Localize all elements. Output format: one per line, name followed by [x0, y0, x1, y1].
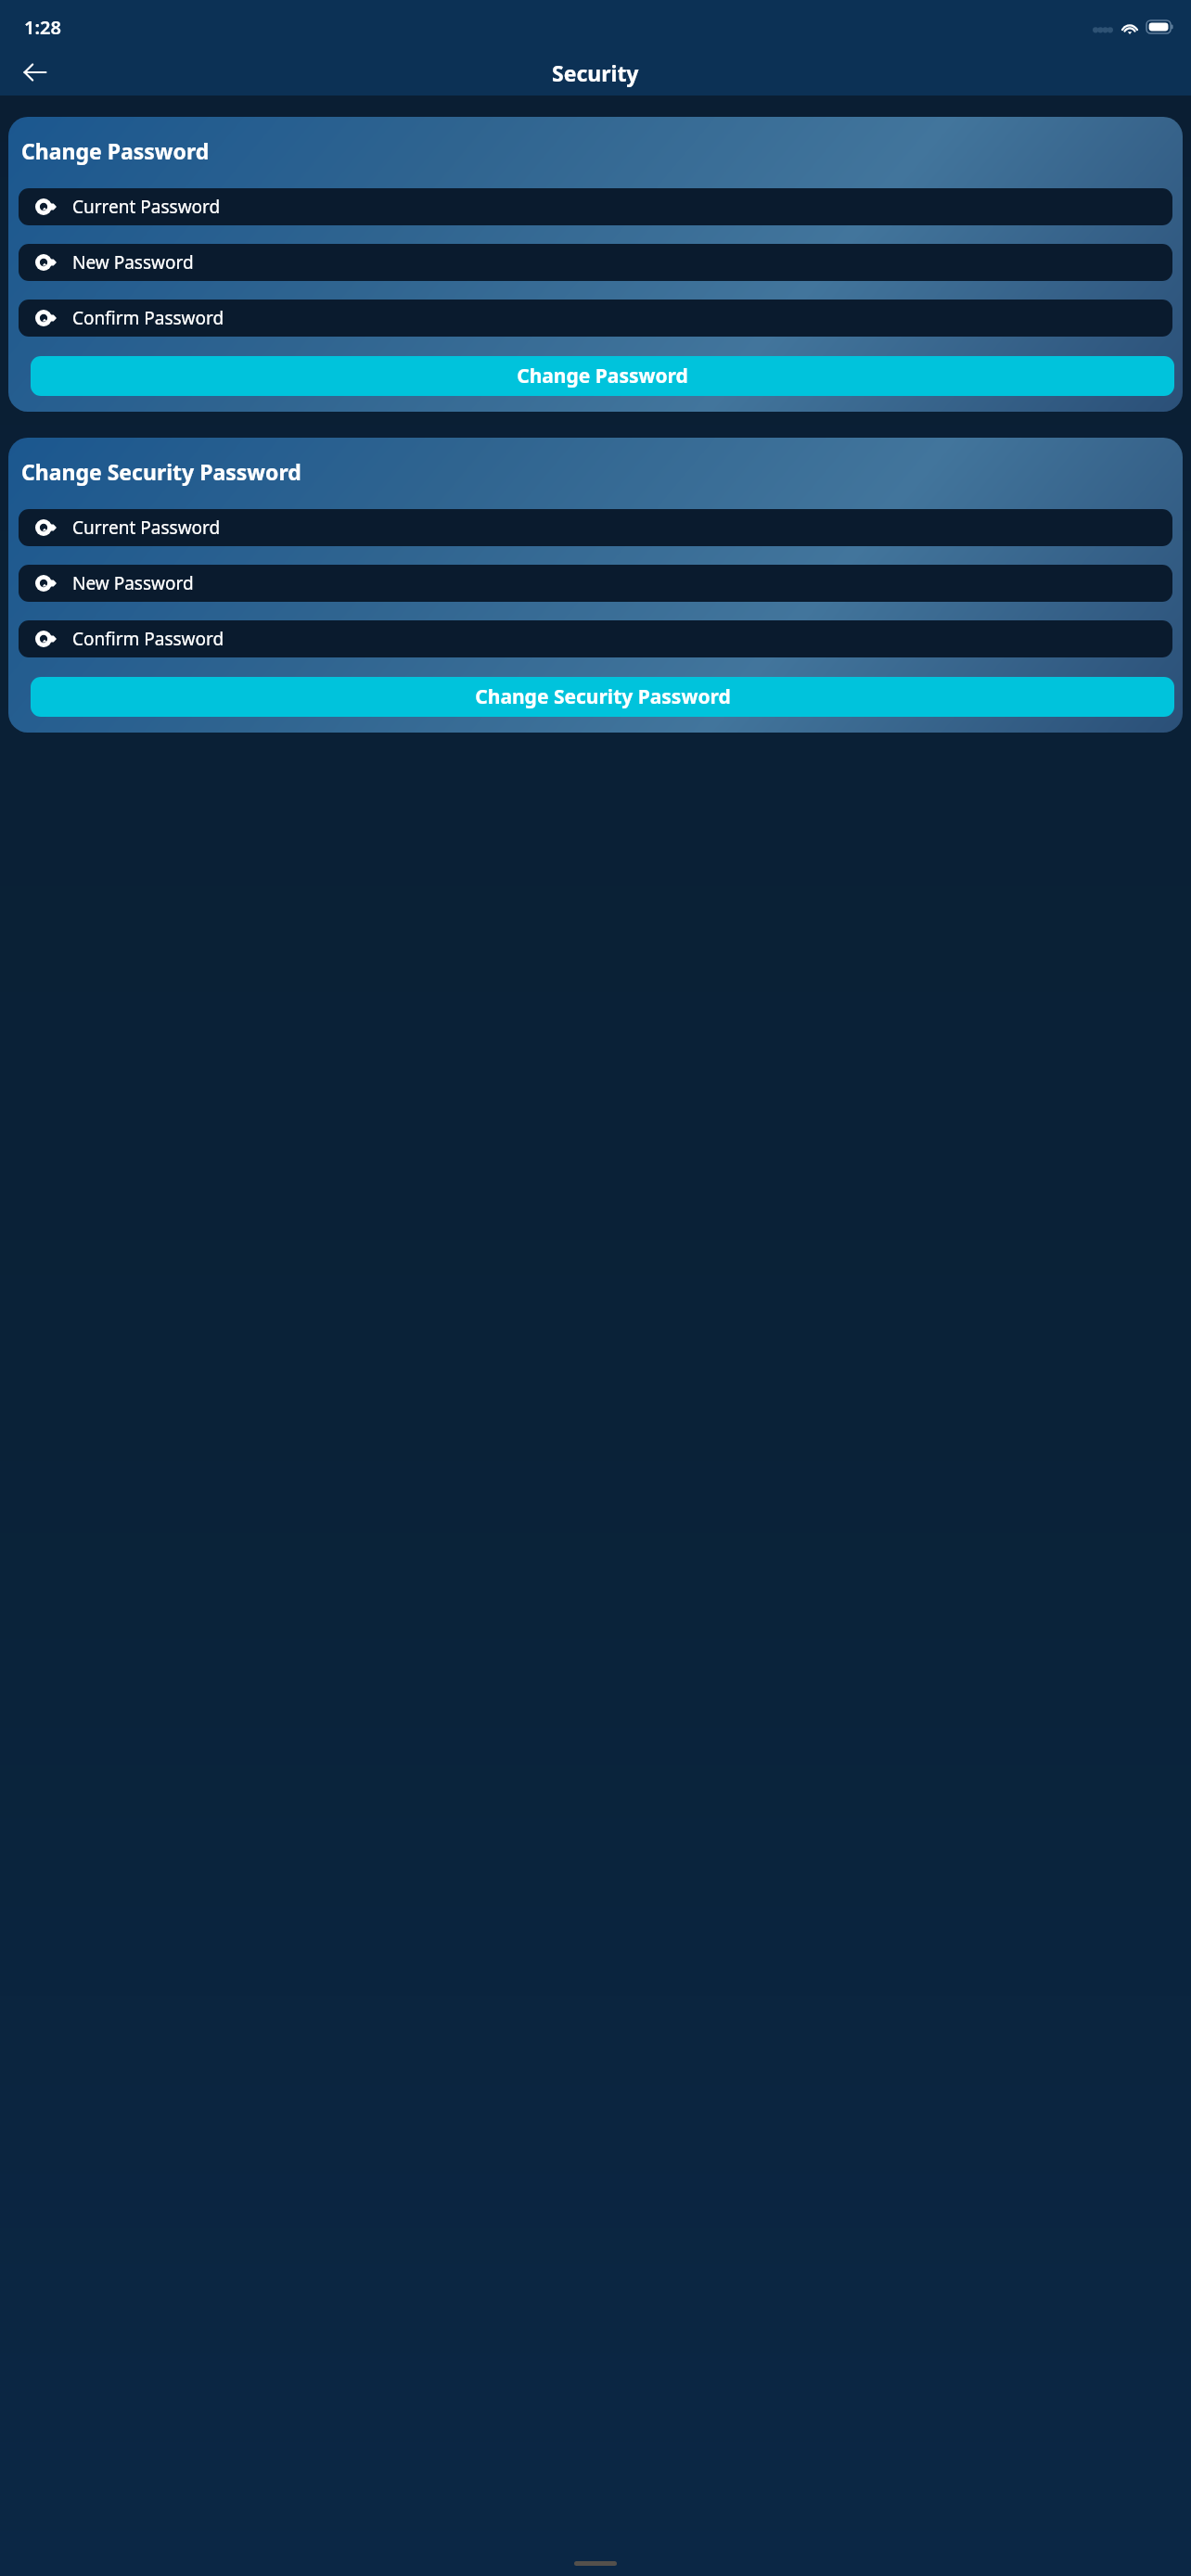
- staticText: Change Password: [21, 136, 210, 165]
- staticText: Current Password: [72, 516, 221, 540]
- staticText: Security: [552, 58, 639, 87]
- button[interactable]: Change Password: [31, 356, 1174, 396]
- staticText: 1:28: [24, 15, 61, 40]
- button[interactable]: New Password: [19, 244, 1172, 281]
- staticText: Change Security Password: [21, 457, 301, 486]
- button[interactable]: Back: [13, 50, 58, 95]
- button[interactable]: Confirm Password: [19, 300, 1172, 337]
- button[interactable]: Change Security Password: [31, 677, 1174, 717]
- button[interactable]: Current Password: [19, 188, 1172, 225]
- button[interactable]: New Password: [19, 565, 1172, 602]
- staticText: Confirm Password: [72, 306, 224, 330]
- staticText: Change Password: [517, 363, 688, 389]
- staticText: New Password: [72, 250, 194, 274]
- button[interactable]: Current Password: [19, 509, 1172, 546]
- staticText: New Password: [72, 571, 194, 595]
- button[interactable]: Confirm Password: [19, 620, 1172, 657]
- staticText: Confirm Password: [72, 627, 224, 651]
- staticText: Change Security Password: [475, 683, 731, 710]
- staticText: Current Password: [72, 195, 221, 219]
